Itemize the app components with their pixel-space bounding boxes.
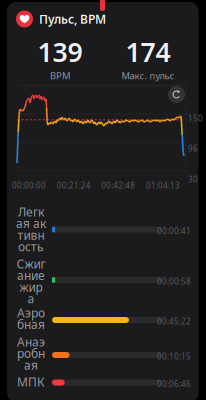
staticText: робн — [17, 345, 45, 361]
staticText: жир — [19, 279, 42, 295]
staticText: Аэро — [17, 305, 45, 321]
staticText: ая ак — [16, 215, 46, 231]
staticText: Легк — [18, 204, 44, 220]
staticText: BPM — [50, 69, 70, 82]
button[interactable]: МПК — [11, 376, 191, 394]
staticText: 01:04:13 — [146, 180, 180, 191]
staticText: 30 — [188, 174, 198, 185]
staticText: Анаэ — [17, 334, 45, 350]
staticText: 00:10:15 — [157, 351, 191, 362]
staticText: 00:45:22 — [157, 316, 191, 327]
staticText: ая — [24, 357, 38, 373]
staticText: 00:00:00 — [12, 180, 46, 191]
staticText: Сжиг — [16, 256, 45, 272]
button[interactable]: Легк — [11, 206, 191, 258]
staticText: 174 — [125, 34, 170, 69]
staticText: 96 — [188, 143, 198, 154]
staticText: 00:00:41 — [157, 225, 191, 236]
staticText: 00:00:58 — [157, 276, 191, 287]
staticText: тивн — [17, 227, 44, 243]
staticText: Макс. пульс — [121, 69, 174, 82]
staticText: 150 — [188, 113, 203, 124]
staticText: 00:21:24 — [57, 180, 91, 191]
staticText: Пульс, BPM — [39, 11, 106, 27]
staticText: бная — [17, 316, 45, 332]
staticText: 00:06:46 — [157, 378, 191, 389]
button[interactable]: Анаэ — [11, 336, 191, 377]
staticText: 00:42:48 — [101, 180, 135, 191]
button[interactable]: Аэро — [11, 307, 191, 336]
button[interactable]: Refresh chart — [168, 86, 185, 103]
staticText: ость — [18, 239, 44, 254]
staticText: ание — [17, 267, 45, 283]
staticText: а — [27, 291, 34, 306]
button[interactable]: Пульс, BPM — [16, 10, 106, 28]
staticText: 139 — [37, 34, 82, 69]
staticText: МПК — [17, 374, 45, 390]
button[interactable]: Сжиг — [11, 258, 191, 310]
